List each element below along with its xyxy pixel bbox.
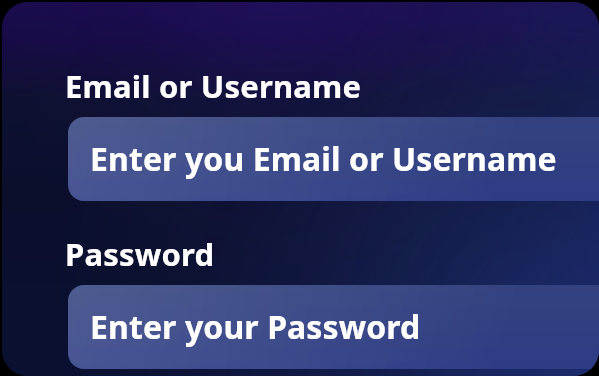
staticText: Enter your Password	[90, 305, 599, 349]
staticText: Enter you Email or Username	[90, 137, 599, 181]
button[interactable]: Email or Username input field	[68, 117, 599, 201]
button[interactable]: Password input field	[68, 285, 599, 369]
staticText: Email or Username	[65, 65, 362, 107]
staticText: Password	[65, 233, 215, 275]
